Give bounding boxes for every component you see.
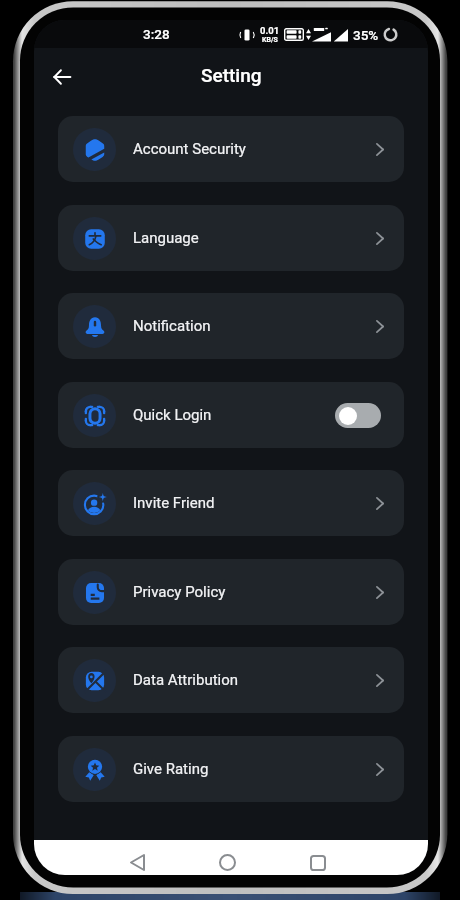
button[interactable]: Notification [58,293,404,359]
staticText: Data Attribution [133,671,239,689]
button[interactable]: Privacy Policy [58,559,404,625]
staticText: Language [133,229,199,247]
staticText: Privacy Policy [133,583,226,601]
staticText: 0.01 [260,25,280,36]
button[interactable]: Account Security [58,116,404,182]
staticText: Notification [133,317,211,335]
button[interactable]: Quick Login [58,382,404,448]
button[interactable]: Language [58,205,404,271]
staticText: KB/S [262,36,278,44]
button[interactable]: Data Attribution [58,647,404,713]
button[interactable]: Recent apps [294,845,341,875]
staticText: 35% [353,27,379,43]
staticText: Setting [201,64,262,86]
button[interactable]: Invite Friend [58,470,404,536]
button[interactable]: Quick Login toggle [335,403,381,428]
staticText: Quick Login [133,406,212,424]
button[interactable]: Give Rating [58,736,404,802]
staticText: Give Rating [133,760,209,778]
button[interactable]: Home [204,845,251,875]
staticText: Invite Friend [133,494,215,512]
staticText: 3:28 [143,26,170,42]
button[interactable]: Back [114,845,161,875]
button[interactable]: Back [39,54,85,100]
staticText: Account Security [133,140,246,158]
